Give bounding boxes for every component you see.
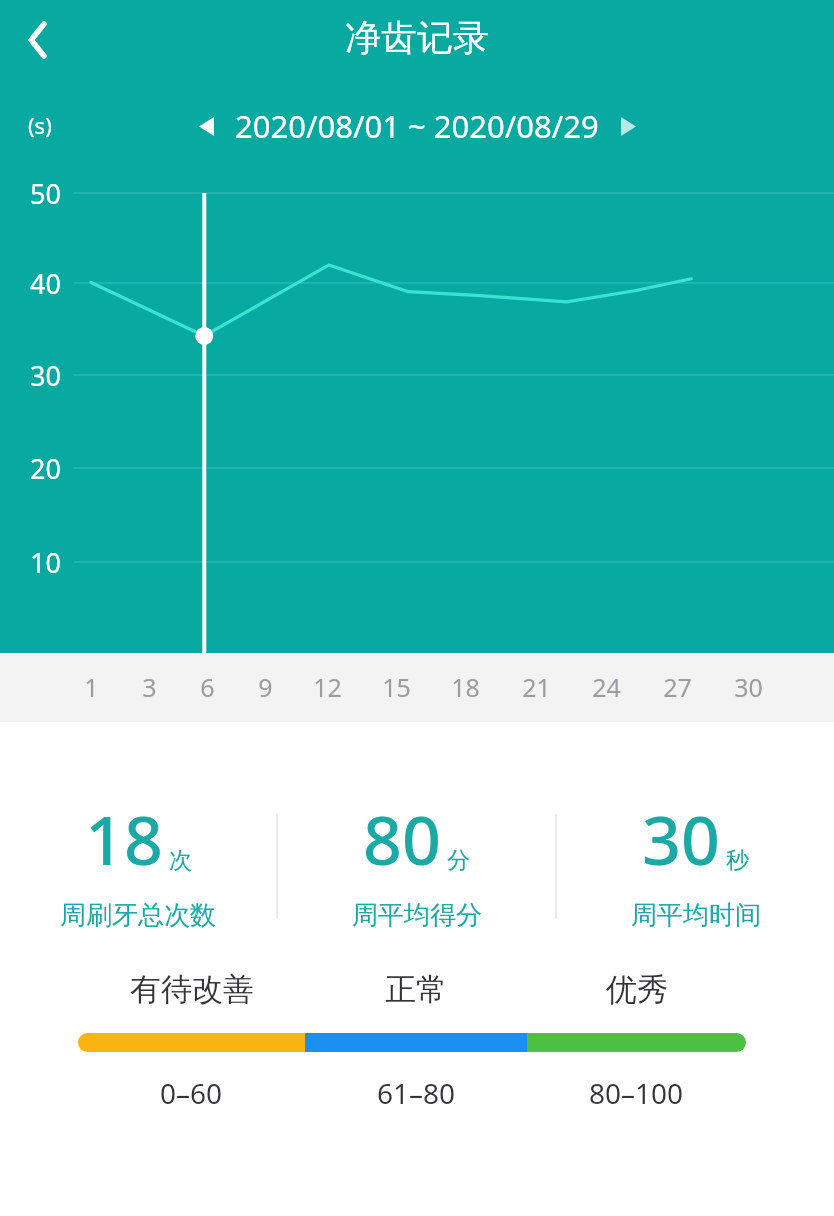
button[interactable]: 80 <box>278 792 555 932</box>
staticText: 61–80 <box>377 1074 456 1112</box>
staticText: 2020/08/01 ~ 2020/08/29 <box>235 105 599 147</box>
button[interactable]: Previous period <box>185 105 227 147</box>
staticText: 次 <box>169 846 192 875</box>
staticText: 0–60 <box>160 1074 223 1112</box>
staticText: 80 <box>363 792 441 885</box>
staticText: 净齿记录 <box>345 15 489 60</box>
staticText: 1 <box>84 670 99 704</box>
staticText: 18 <box>85 792 163 885</box>
button[interactable]: 18 <box>0 792 276 932</box>
staticText: 30 <box>734 670 763 704</box>
staticText: 27 <box>663 670 692 704</box>
staticText: 分 <box>447 846 470 875</box>
staticText: 3 <box>142 670 157 704</box>
staticText: 周平均时间 <box>631 899 761 932</box>
staticText: 有待改善 <box>130 970 254 1009</box>
staticText: 10 <box>30 544 61 581</box>
button[interactable]: 30 <box>557 792 834 932</box>
staticText: 周刷牙总次数 <box>60 899 216 932</box>
staticText: 15 <box>382 670 411 704</box>
staticText: 30 <box>642 792 720 885</box>
staticText: 30 <box>30 357 61 394</box>
staticText: 秒 <box>726 846 749 875</box>
staticText: 21 <box>522 670 551 704</box>
staticText: 12 <box>313 670 342 704</box>
staticText: 6 <box>200 670 215 704</box>
button[interactable]: Back <box>6 8 70 72</box>
staticText: 24 <box>592 670 621 704</box>
staticText: 正常 <box>385 970 447 1009</box>
staticText: 优秀 <box>606 970 668 1009</box>
staticText: 20 <box>30 450 61 487</box>
staticText: 80–100 <box>589 1074 684 1112</box>
staticText: 40 <box>30 265 61 302</box>
button[interactable]: Next period <box>607 105 649 147</box>
staticText: 周平均得分 <box>352 899 482 932</box>
staticText: 18 <box>451 670 480 704</box>
staticText: 50 <box>30 175 61 212</box>
staticText: (s) <box>28 110 52 140</box>
staticText: 9 <box>258 670 273 704</box>
